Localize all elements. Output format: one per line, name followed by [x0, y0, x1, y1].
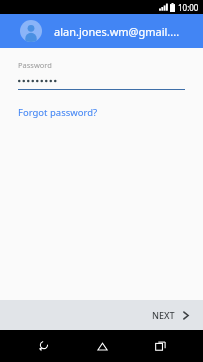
button[interactable]: alan.jones.wm@gmail.... — [0, 14, 203, 48]
button[interactable]: Forgot password? — [0, 102, 116, 123]
button[interactable]: Password — [0, 60, 203, 90]
button[interactable]: Back — [27, 330, 59, 362]
button[interactable]: Recent apps — [144, 330, 176, 362]
staticText: NEXT — [152, 309, 175, 321]
staticText: 10:00 — [178, 2, 199, 13]
staticText: alan.jones.wm@gmail.... — [54, 24, 180, 39]
button[interactable]: Home — [86, 330, 118, 362]
staticText: Forgot password? — [18, 106, 98, 119]
staticText: Password — [18, 60, 52, 70]
button[interactable]: NEXT — [138, 303, 203, 327]
